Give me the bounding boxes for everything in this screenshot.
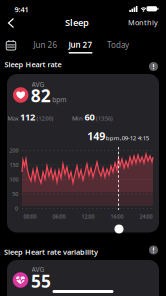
staticText: AVG xyxy=(31,80,44,89)
button[interactable]: Chart time cursor xyxy=(114,224,123,233)
button[interactable]: About Sleep Heart rate xyxy=(149,62,158,71)
staticText: AVG xyxy=(31,265,44,274)
button[interactable]: Choose date xyxy=(3,37,18,53)
staticText: Sleep Heart rate variability xyxy=(4,247,98,257)
staticText: 24:00 xyxy=(139,213,152,220)
staticText: 200 xyxy=(9,147,18,154)
staticText: 06:00 xyxy=(52,213,65,220)
button[interactable]: About Sleep Heart rate variability xyxy=(149,245,158,254)
staticText: Min xyxy=(72,114,83,122)
staticText: 12:00 xyxy=(81,213,94,220)
staticText: Monthly xyxy=(128,17,158,27)
staticText: 55 xyxy=(31,269,51,292)
button[interactable]: Today xyxy=(105,38,131,52)
staticText: 50 xyxy=(12,190,18,198)
staticText: (13:56) xyxy=(96,115,113,122)
button[interactable]: Back xyxy=(4,14,17,31)
staticText: 9:41 xyxy=(14,4,28,14)
staticText: 0 xyxy=(15,205,18,212)
staticText: 100 xyxy=(9,176,18,183)
button[interactable]: Jun 27 xyxy=(68,39,92,53)
staticText: 82 xyxy=(31,84,51,107)
staticText: 150 xyxy=(9,161,18,169)
staticText: Jun 26 xyxy=(33,40,57,50)
staticText: 00:00 xyxy=(23,213,36,220)
button[interactable]: Jun 26 xyxy=(31,38,59,52)
staticText: Sleep Heart rate xyxy=(4,59,61,69)
staticText: 149 xyxy=(87,129,105,143)
staticText: 112 xyxy=(20,111,35,123)
staticText: bpm,09-12 4:15 xyxy=(106,134,149,142)
staticText: Sleep xyxy=(65,16,89,29)
staticText: 16:00 xyxy=(110,213,123,220)
staticText: bpm xyxy=(52,95,66,104)
staticText: Jun 27 xyxy=(68,39,92,50)
staticText: Max xyxy=(7,114,18,122)
staticText: 60 xyxy=(84,111,94,123)
staticText: Today xyxy=(107,40,129,50)
staticText: (12:00) xyxy=(36,115,53,122)
button[interactable]: Monthly xyxy=(128,17,158,27)
